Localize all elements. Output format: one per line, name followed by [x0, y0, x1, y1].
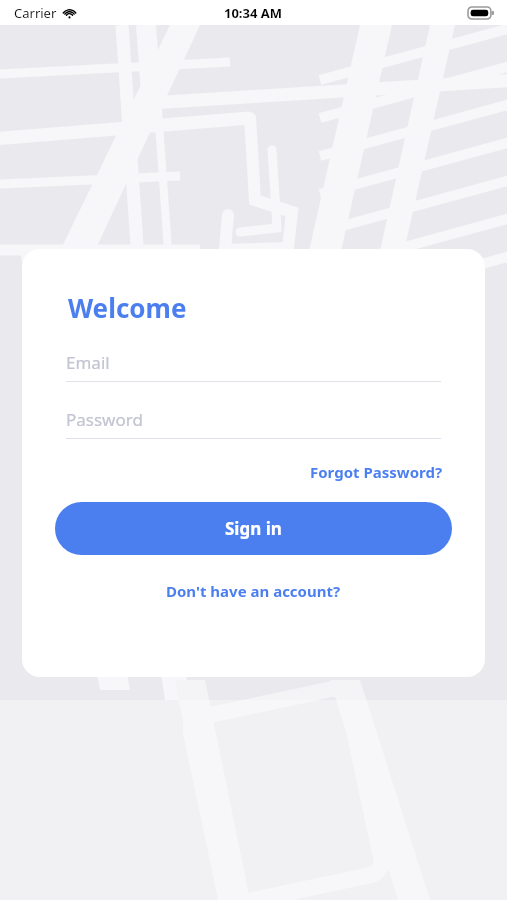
- button[interactable]: Sign in: [55, 502, 452, 555]
- staticText: Forgot Password?: [310, 462, 443, 482]
- button[interactable]: Don't have an account?: [162, 578, 345, 604]
- staticText: Password: [66, 408, 143, 431]
- staticText: 10:34 AM: [224, 4, 283, 22]
- button[interactable]: Password: [66, 408, 441, 439]
- button[interactable]: Forgot Password?: [308, 459, 445, 485]
- staticText: Welcome: [68, 290, 187, 325]
- staticText: Don't have an account?: [166, 581, 341, 601]
- staticText: Email: [66, 351, 110, 374]
- button[interactable]: Email: [66, 351, 441, 382]
- staticText: Sign in: [225, 517, 282, 540]
- staticText: Carrier: [14, 4, 57, 22]
